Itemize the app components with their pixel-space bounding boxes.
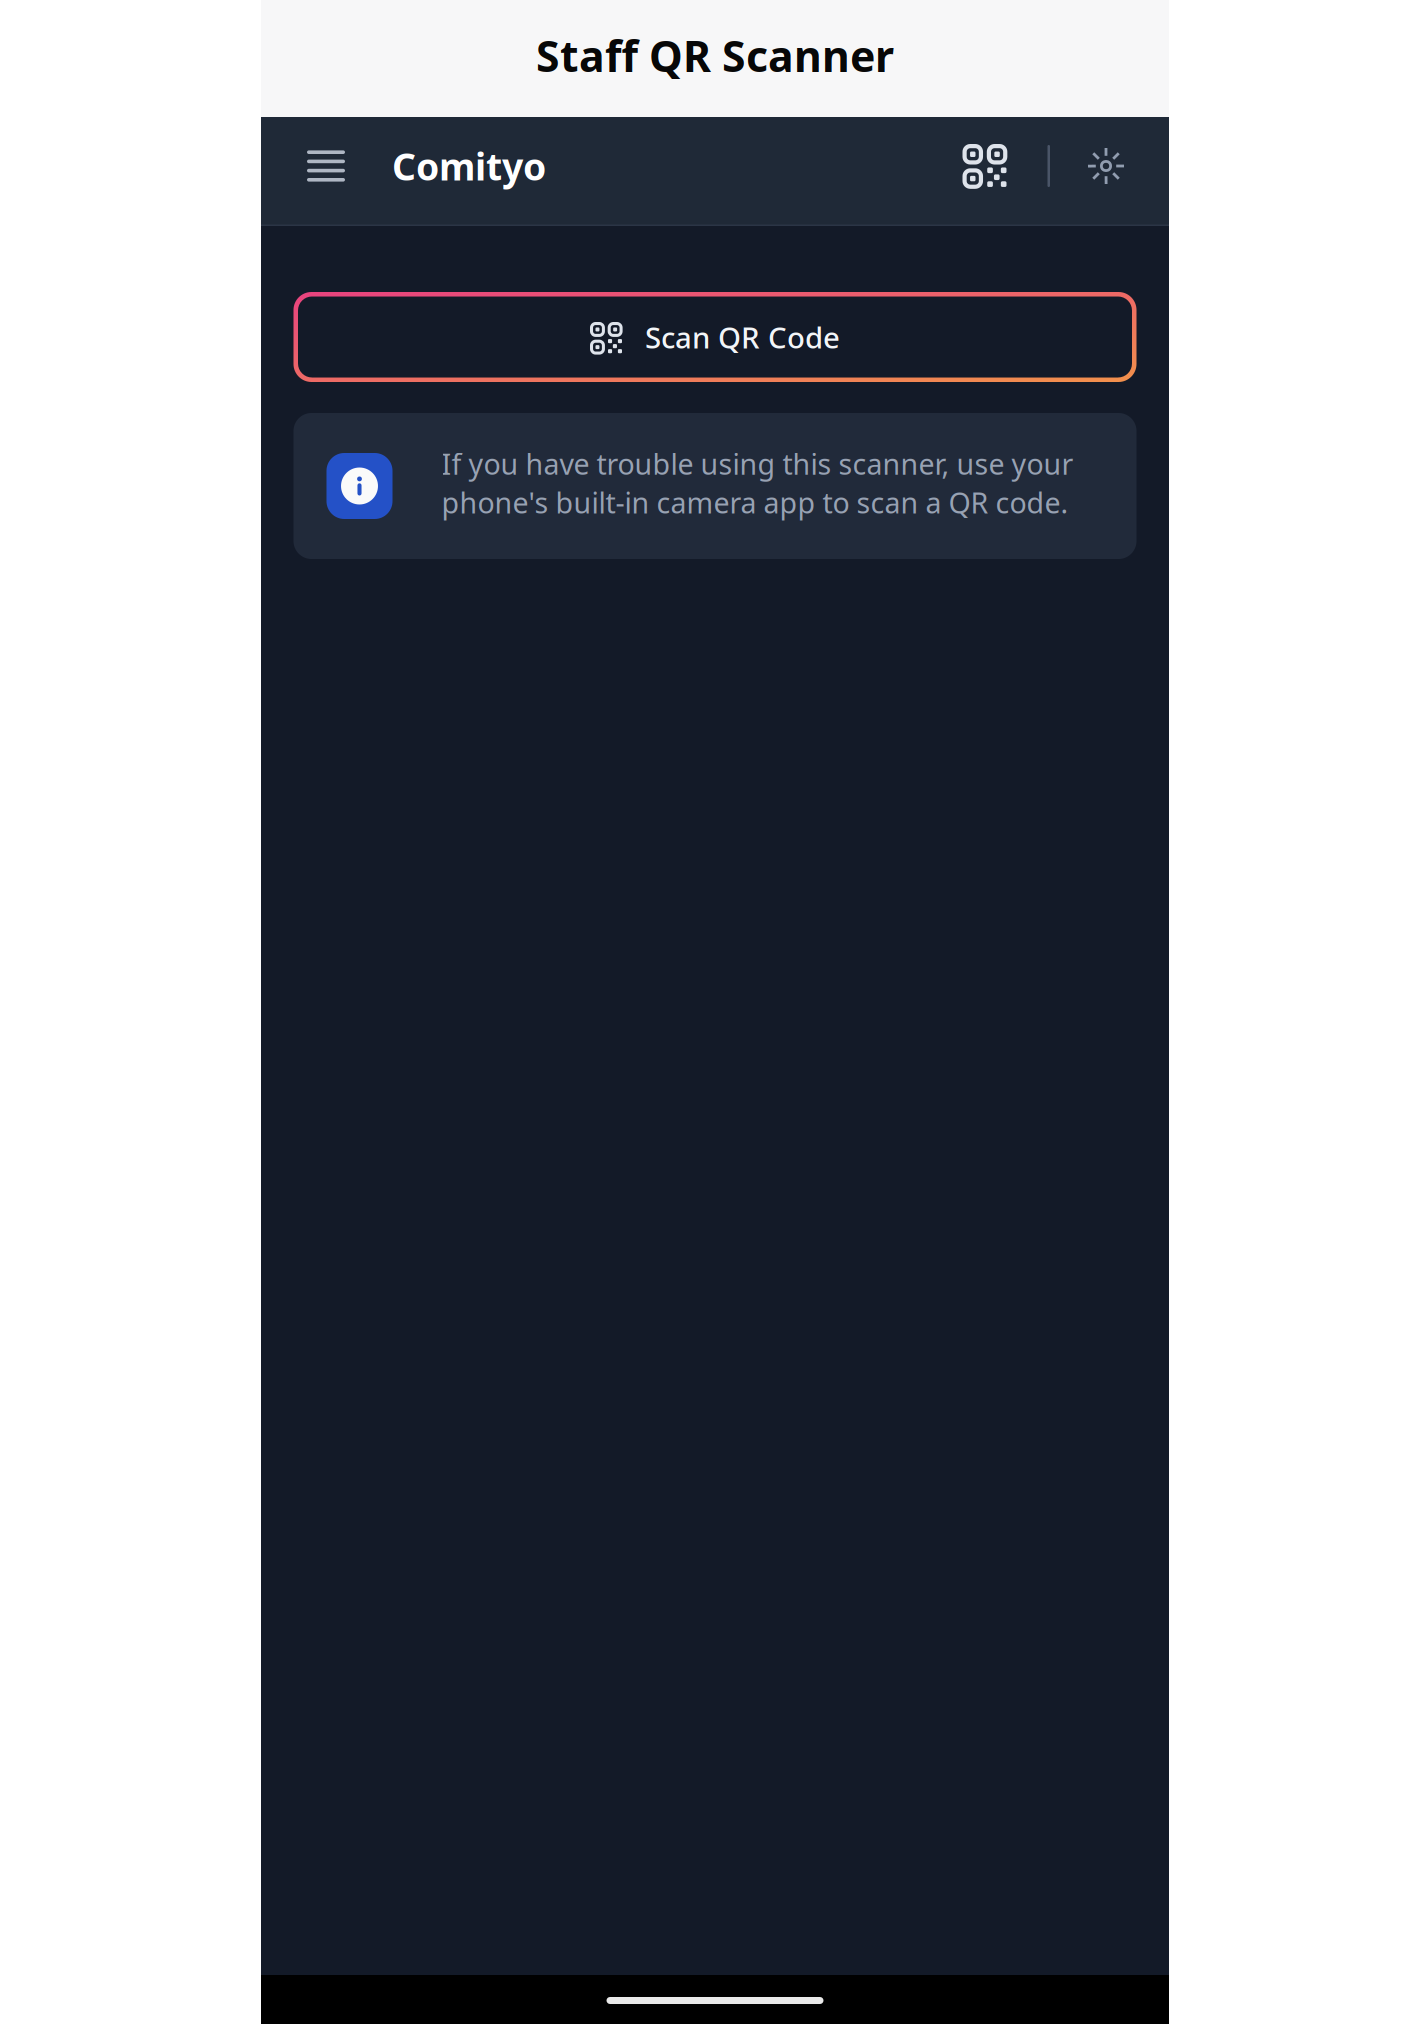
button[interactable]: Scan QR Code: [293, 292, 1136, 382]
button[interactable]: Menu: [299, 137, 353, 195]
staticText: Staff QR Scanner: [536, 27, 894, 84]
button[interactable]: Scan QR code: [956, 138, 1012, 194]
staticText: Scan QR Code: [645, 317, 840, 356]
button[interactable]: Toggle appearance: [1084, 144, 1128, 188]
staticText: If you have trouble using this scanner, …: [441, 444, 1073, 522]
staticText: Comityo: [392, 141, 546, 191]
